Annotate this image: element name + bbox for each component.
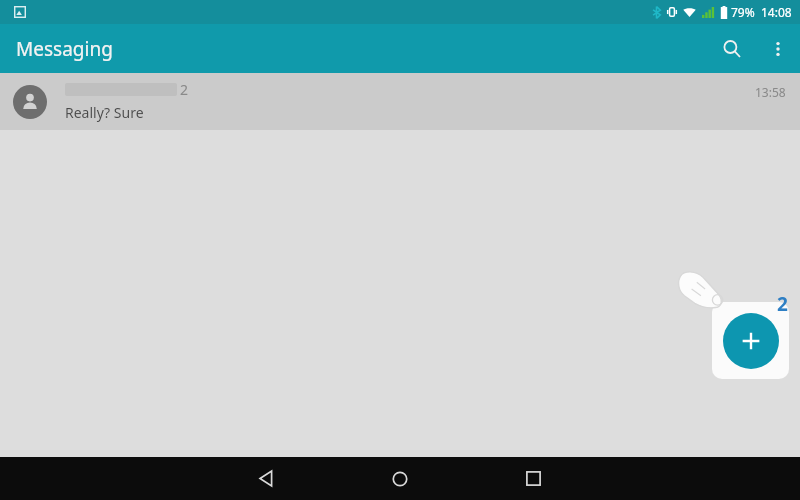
staticText: 13:58 bbox=[755, 84, 786, 100]
button[interactable]: Search bbox=[708, 25, 756, 73]
button[interactable]: New message bbox=[712, 302, 789, 379]
staticText: 79% bbox=[731, 4, 755, 20]
button[interactable]: More options bbox=[756, 27, 800, 71]
button[interactable]: Home bbox=[376, 457, 424, 500]
staticText: 14:08 bbox=[761, 4, 792, 20]
button[interactable]: Recent apps bbox=[509, 457, 557, 500]
staticText: Really? Sure bbox=[65, 103, 144, 122]
staticText: 2 bbox=[777, 291, 788, 315]
staticText: Messaging bbox=[16, 36, 113, 62]
button[interactable]: 2 bbox=[0, 73, 800, 130]
button[interactable]: Back bbox=[242, 457, 290, 500]
staticText: 2 bbox=[180, 80, 189, 99]
